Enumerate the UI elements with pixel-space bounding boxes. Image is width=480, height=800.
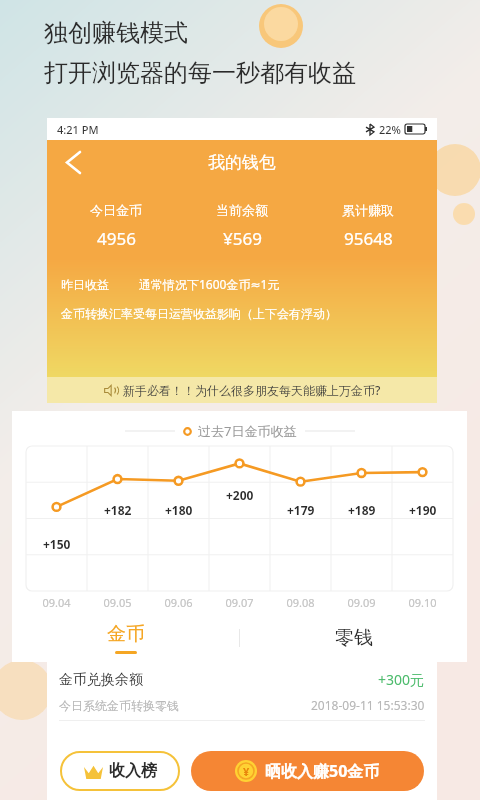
staticText: 当前余额 xyxy=(216,202,268,218)
staticText: 独创赚钱模式 xyxy=(44,18,188,48)
button[interactable]: 金币 xyxy=(12,614,239,662)
staticText: +300元 xyxy=(378,670,425,689)
staticText: 金币兑换余额 xyxy=(59,671,143,689)
button[interactable]: 新手必看！！为什么很多朋友每天能赚上万金币? xyxy=(47,377,437,403)
button[interactable]: 零钱 xyxy=(240,614,467,662)
staticText: 今日系统金币转换零钱 xyxy=(59,698,179,713)
staticText: +182 xyxy=(104,502,132,518)
staticText: 收入榜 xyxy=(109,761,157,781)
staticText: +180 xyxy=(165,502,193,518)
staticText: 零钱 xyxy=(335,626,373,650)
button[interactable]: ¥ xyxy=(191,751,424,791)
staticText: +189 xyxy=(348,502,376,518)
staticText: 金币 xyxy=(107,622,145,646)
staticText: 通常情况下1600金币≈1元 xyxy=(139,276,280,292)
staticText: 09.04 xyxy=(26,595,87,610)
staticText: ¥569 xyxy=(223,227,262,250)
staticText: 我的钱包 xyxy=(208,152,276,173)
staticText: 09.07 xyxy=(209,595,270,610)
staticText: 09.06 xyxy=(148,595,209,610)
staticText: 4:21 PM xyxy=(57,122,99,137)
staticText: +200 xyxy=(226,487,254,503)
staticText: 今日金币 xyxy=(90,202,142,218)
staticText: 打开浏览器的每一秒都有收益 xyxy=(44,58,356,88)
staticText: +150 xyxy=(43,536,71,552)
staticText: +190 xyxy=(409,502,437,518)
staticText: 09.10 xyxy=(392,595,453,610)
staticText: ¥ xyxy=(243,764,250,779)
staticText: 2018-09-11 15:53:30 xyxy=(311,697,425,713)
staticText: 09.05 xyxy=(87,595,148,610)
staticText: +179 xyxy=(287,502,315,518)
staticText: 22% xyxy=(379,122,401,137)
staticText: 09.08 xyxy=(270,595,331,610)
staticText: 过去7日金币收益 xyxy=(198,422,297,440)
staticText: 新手必看！！为什么很多朋友每天能赚上万金币? xyxy=(123,382,381,398)
button[interactable]: Back xyxy=(55,144,91,180)
staticText: 累计赚取 xyxy=(342,202,394,218)
staticText: 金币转换汇率受每日运营收益影响（上下会有浮动） xyxy=(61,306,337,321)
staticText: 晒收入赚50金币 xyxy=(265,760,380,782)
staticText: 95648 xyxy=(344,227,393,250)
button[interactable]: 收入榜 xyxy=(60,751,180,791)
staticText: 09.09 xyxy=(331,595,392,610)
staticText: 4956 xyxy=(97,227,136,250)
staticText: 昨日收益 xyxy=(61,277,109,292)
